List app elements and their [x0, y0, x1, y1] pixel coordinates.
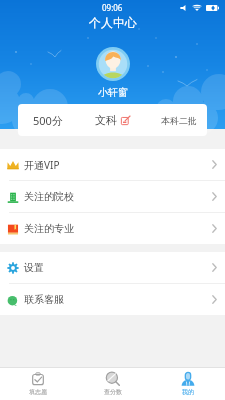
button[interactable]: 500分 — [18, 104, 81, 136]
staticText: 查分数 — [104, 388, 122, 396]
staticText: 个人中心 — [89, 15, 137, 30]
button[interactable]: 关注的专业 — [0, 213, 225, 244]
staticText: 联系客服 — [24, 293, 64, 306]
staticText: 关注的院校 — [24, 190, 74, 203]
staticText: 500分 — [33, 113, 63, 128]
button[interactable]: 填志愿 — [0, 368, 75, 400]
staticText: 填志愿 — [29, 388, 47, 396]
staticText: 09:06 — [102, 2, 123, 13]
staticText: 文科 — [95, 113, 117, 127]
button[interactable]: 联系客服 — [0, 284, 225, 315]
staticText: 开通VIP — [24, 158, 60, 172]
staticText: 我的 — [182, 388, 194, 396]
staticText: 本科二批 — [161, 115, 197, 126]
button[interactable]: 关注的院校 — [0, 181, 225, 212]
button[interactable]: 本科二批 — [144, 104, 207, 136]
button[interactable]: 查分数 — [75, 368, 150, 400]
button[interactable]: 文科 — [81, 104, 144, 136]
button[interactable]: 设置 — [0, 252, 225, 283]
button[interactable]: 我的 — [150, 368, 225, 400]
staticText: 小轩窗 — [98, 86, 128, 99]
staticText: 关注的专业 — [24, 222, 74, 235]
button[interactable]: 开通VIP — [0, 149, 225, 180]
staticText: 设置 — [24, 261, 44, 274]
